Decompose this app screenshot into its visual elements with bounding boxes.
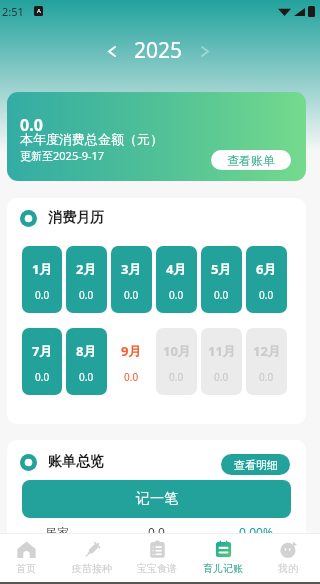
staticText: 9月 xyxy=(121,342,142,360)
staticText: A xyxy=(37,7,41,15)
staticText: 0.00% xyxy=(239,524,273,540)
staticText: 6月 xyxy=(256,260,277,278)
button[interactable]: 2月 xyxy=(66,246,107,313)
button[interactable]: 疫苗接种 xyxy=(59,534,125,582)
staticText: 账单总览 xyxy=(48,453,104,471)
staticText: 更新至2025-9-17 xyxy=(20,148,105,163)
staticText: 1月 xyxy=(32,260,53,278)
staticText: 育儿记账 xyxy=(203,562,243,575)
button[interactable]: 5月 xyxy=(201,246,242,313)
staticText: 0.0 xyxy=(20,114,43,136)
staticText: 4月 xyxy=(166,260,187,278)
staticText: 0.0 xyxy=(259,288,274,302)
staticText: 12月 xyxy=(253,342,281,360)
staticText: 0.0 xyxy=(124,288,139,302)
staticText: 我的 xyxy=(278,562,298,575)
staticText: 3月 xyxy=(121,260,142,278)
button[interactable]: 1月 xyxy=(22,246,62,313)
staticText: 10月 xyxy=(163,342,191,360)
staticText: 2月 xyxy=(76,260,97,278)
button[interactable]: 7月 xyxy=(22,328,62,395)
staticText: 0.0 xyxy=(259,370,274,384)
button[interactable]: Next year xyxy=(194,40,216,62)
staticText: 2:51 xyxy=(2,4,24,19)
staticText: 2025 xyxy=(134,36,183,65)
button[interactable]: 3月 xyxy=(111,246,152,313)
staticText: 5月 xyxy=(211,260,232,278)
staticText: 0.0 xyxy=(35,288,50,302)
staticText: 0.0 xyxy=(35,370,50,384)
button[interactable]: 记一笔 xyxy=(22,480,291,518)
staticText: 0.0 xyxy=(214,370,229,384)
button[interactable]: 首页 xyxy=(0,534,59,582)
staticText: 0.0 xyxy=(169,288,184,302)
staticText: 0.0 xyxy=(124,370,139,384)
button[interactable]: 宝宝食谱 xyxy=(124,534,190,582)
staticText: 本年度消费总金额（元） xyxy=(20,131,163,147)
button[interactable]: 我的 xyxy=(255,534,320,582)
staticText: 8月 xyxy=(76,342,97,360)
button[interactable]: 4月 xyxy=(156,246,197,313)
staticText: 查看账单 xyxy=(227,153,275,168)
staticText: 0.0 xyxy=(148,524,165,540)
staticText: 首页 xyxy=(16,562,36,575)
staticText: 查看明细 xyxy=(234,458,278,472)
button[interactable]: 查看明细 xyxy=(221,454,290,475)
button[interactable]: 育儿记账 xyxy=(190,534,256,582)
staticText: 宝宝食谱 xyxy=(137,562,177,575)
staticText: 11月 xyxy=(208,342,236,360)
staticText: 0.0 xyxy=(79,370,94,384)
staticText: 0.0 xyxy=(79,288,94,302)
staticText: 疫苗接种 xyxy=(72,562,112,575)
staticText: 居家 xyxy=(45,525,69,540)
staticText: 0.0 xyxy=(214,288,229,302)
staticText: 0.0 xyxy=(169,370,184,384)
button[interactable]: Previous year xyxy=(101,40,123,62)
button[interactable]: 6月 xyxy=(246,246,287,313)
button[interactable]: 12月 xyxy=(246,328,287,395)
button[interactable]: 9月 xyxy=(111,328,152,395)
button[interactable]: 10月 xyxy=(156,328,197,395)
staticText: 消费月历 xyxy=(48,209,104,227)
button[interactable]: 11月 xyxy=(201,328,242,395)
button[interactable]: 8月 xyxy=(66,328,107,395)
button[interactable]: 查看账单 xyxy=(211,150,291,170)
staticText: 7月 xyxy=(32,342,53,360)
staticText: 记一笔 xyxy=(136,490,178,508)
